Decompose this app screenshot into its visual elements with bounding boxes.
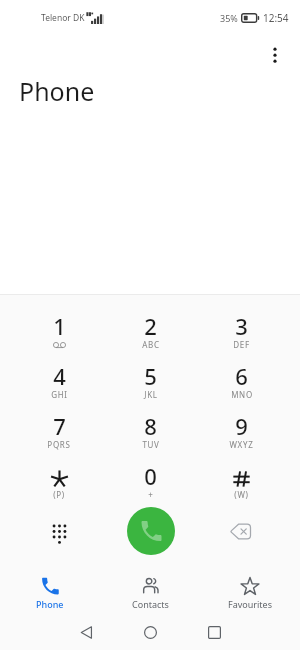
staticText: JKL <box>144 389 158 400</box>
staticText: ABC <box>142 339 160 350</box>
staticText: 6 <box>235 361 248 391</box>
button[interactable]: 0 <box>105 462 196 512</box>
staticText: Telenor DK <box>41 12 85 24</box>
staticText: + <box>148 489 154 500</box>
button[interactable]: Contacts <box>100 569 200 615</box>
staticText: 3 <box>235 311 248 341</box>
staticText: 12:54 <box>263 11 289 25</box>
staticText: GHI <box>51 389 68 400</box>
button[interactable]: 9 <box>196 412 287 462</box>
staticText: Phone <box>19 74 95 108</box>
staticText: TUV <box>142 439 160 450</box>
staticText: 7 <box>53 411 66 441</box>
staticText: Favourites <box>228 598 272 610</box>
button[interactable]: Back <box>54 615 118 650</box>
staticText: PQRS <box>47 439 71 450</box>
staticText: Phone <box>36 598 64 610</box>
staticText: (W) <box>234 489 249 500</box>
button[interactable]: Recents <box>182 615 246 650</box>
button[interactable]: Favourites <box>200 569 300 615</box>
button[interactable]: Dialpad <box>13 500 105 562</box>
button[interactable]: (P) <box>13 462 105 512</box>
button[interactable]: 1 <box>13 312 105 362</box>
staticText: 0 <box>144 461 157 491</box>
staticText: DEF <box>233 339 250 350</box>
staticText: 4 <box>53 361 66 391</box>
button[interactable]: 4 <box>13 362 105 412</box>
button[interactable]: Home <box>118 615 182 650</box>
button[interactable]: Phone <box>0 569 100 615</box>
button[interactable]: 7 <box>13 412 105 462</box>
button[interactable]: More options <box>261 40 289 68</box>
button[interactable]: Call <box>127 507 175 555</box>
staticText: MNO <box>231 389 253 400</box>
staticText: 1 <box>53 311 66 341</box>
staticText: 35% <box>220 12 238 24</box>
button[interactable]: (W) <box>196 462 287 512</box>
staticText: (P) <box>53 489 65 500</box>
button[interactable]: 5 <box>105 362 196 412</box>
button[interactable]: 2 <box>105 312 196 362</box>
button[interactable]: 6 <box>196 362 287 412</box>
button[interactable]: 8 <box>105 412 196 462</box>
staticText: WXYZ <box>229 439 254 450</box>
button[interactable]: Backspace <box>196 500 287 562</box>
button[interactable]: 3 <box>196 312 287 362</box>
staticText: 9 <box>235 411 248 441</box>
staticText: 5 <box>144 361 157 391</box>
staticText: 2 <box>144 311 157 341</box>
staticText: 8 <box>144 411 157 441</box>
staticText: Contacts <box>132 598 169 610</box>
